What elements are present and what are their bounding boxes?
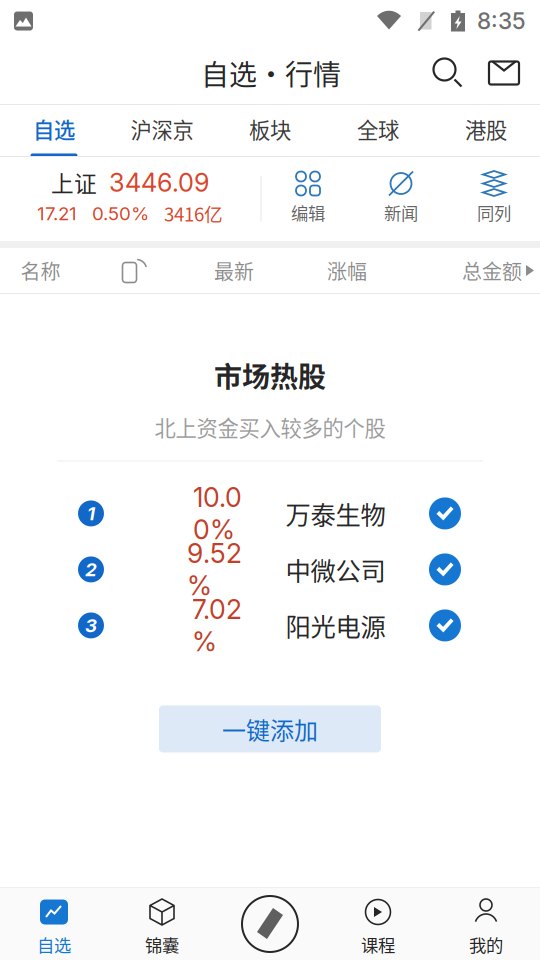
staticText: 3 [85,614,97,637]
staticText: 北上资金买入较多的个股 [154,411,385,442]
staticText: 沪深京 [130,114,193,144]
staticText: 自选 [37,932,71,957]
button[interactable]: 1 [0,485,540,541]
button[interactable]: 2 [0,541,540,597]
staticText: 板块 [249,114,291,144]
staticText: 7.02% [192,593,242,658]
staticText: 涨幅 [327,256,367,285]
staticText: 9.52% [187,537,242,602]
staticText: 8:35 [477,7,526,35]
button[interactable]: 港股 [432,105,540,156]
button[interactable]: 沪深京 [108,105,216,156]
staticText: 市场热股 [214,355,326,395]
staticText: 总金额 [462,256,522,285]
staticText: 自选·行情 [201,53,341,93]
staticText: 3446.09 [109,167,209,198]
staticText: 2 [85,558,97,581]
staticText: 万泰生物 [285,495,385,532]
button[interactable]: 课程 [324,888,432,960]
staticText: 新闻 [384,200,418,225]
staticText: 锦囊 [145,932,179,957]
button[interactable]: 新闻 [354,157,447,241]
staticText: 自选 [33,114,75,144]
staticText: 课程 [361,932,395,957]
button[interactable]: 搜索 [420,42,476,104]
staticText: 上证 [51,166,97,199]
staticText: 1 [87,502,95,525]
staticText: 最新 [214,256,254,285]
staticText: 同列 [477,200,511,225]
button[interactable]: 全球 [324,105,432,156]
button[interactable]: 一键添加 [159,705,381,752]
button[interactable]: 同列 [447,157,540,241]
button[interactable]: 消息 [476,42,532,104]
staticText: 10.00% [193,481,242,546]
staticText: 阳光电源 [285,607,385,644]
button[interactable]: 首页 [216,888,324,960]
button[interactable]: 3 [0,597,540,653]
staticText: 中微公司 [285,551,385,588]
staticText: 全球 [357,114,399,144]
staticText: 我的 [469,932,503,957]
button[interactable]: 板块 [216,105,324,156]
staticText: 0.50% [92,202,149,225]
button[interactable]: 我的 [432,888,540,960]
button[interactable]: 自选 [0,888,108,960]
staticText: 3416亿 [164,200,223,227]
button[interactable]: 编辑 [261,157,354,241]
staticText: 编辑 [291,200,325,225]
staticText: 名称 [20,256,60,285]
staticText: 一键添加 [222,712,318,746]
staticText: 港股 [465,114,507,144]
staticText: 17.21 [37,202,77,225]
button[interactable]: 锦囊 [108,888,216,960]
button[interactable]: 自选 [0,105,108,156]
